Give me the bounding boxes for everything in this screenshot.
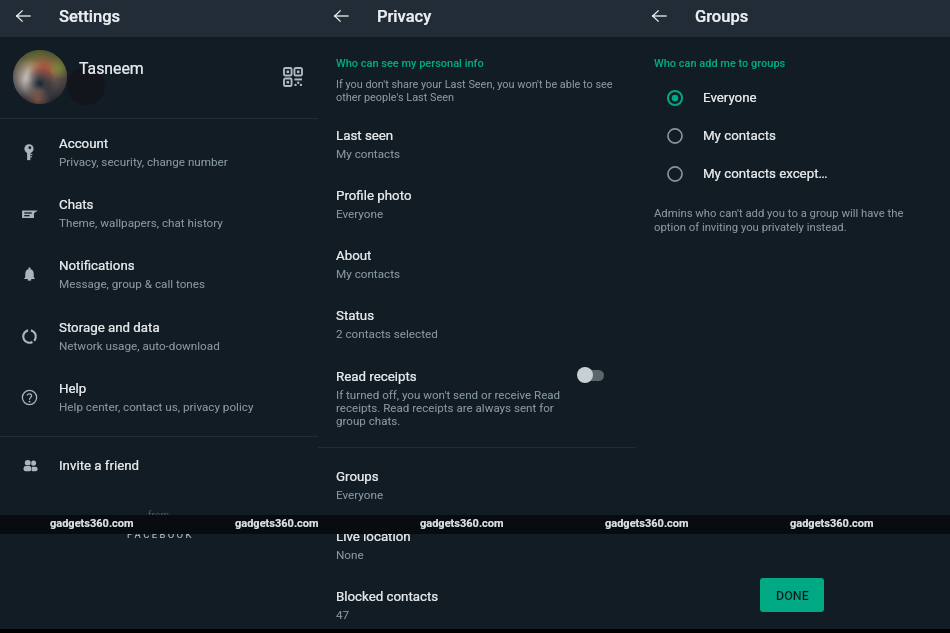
staticText: My contacts	[703, 128, 776, 144]
button[interactable]: Status	[318, 301, 636, 347]
button[interactable]: Storage and data	[0, 313, 318, 359]
staticText: Help	[59, 381, 87, 397]
button[interactable]: Help	[0, 374, 318, 420]
button[interactable]: Groups	[318, 462, 636, 508]
staticText: Everyone	[336, 488, 384, 502]
staticText: Notifications	[59, 258, 135, 274]
staticText: My contacts	[336, 267, 401, 281]
staticText: Read receipts	[336, 369, 417, 385]
staticText: Theme, wallpapers, chat history	[59, 216, 223, 230]
staticText: Who can see my personal info	[336, 57, 484, 70]
staticText: 47	[336, 608, 350, 622]
button[interactable]: Tasneem	[0, 37, 318, 117]
staticText: Blocked contacts	[336, 589, 439, 605]
staticText: Tasneem	[79, 59, 144, 78]
button[interactable]: Blocked contacts	[318, 582, 636, 628]
staticText: Invite a friend	[59, 458, 140, 474]
button[interactable]: Account	[0, 129, 318, 175]
button[interactable]: Chats	[0, 190, 318, 236]
staticText: Admins who can't add you to a group will…	[654, 207, 916, 234]
staticText: Chats	[59, 197, 94, 213]
staticText: Account	[59, 136, 109, 152]
staticText: Network usage, auto-download	[59, 339, 220, 353]
staticText: gadgets360.com	[235, 517, 319, 530]
staticText: If turned off, you won't send or receive…	[336, 388, 567, 428]
staticText: Groups	[695, 7, 749, 26]
staticText: None	[336, 548, 364, 562]
button[interactable]: Live location	[318, 522, 636, 568]
staticText: About	[336, 248, 372, 264]
staticText: Everyone	[336, 207, 384, 221]
staticText: Last seen	[336, 128, 394, 144]
button[interactable]: My QR code	[284, 68, 302, 86]
staticText: gadgets360.com	[790, 517, 874, 530]
staticText: F A C E B O O K	[127, 529, 192, 540]
staticText: Live location	[336, 529, 411, 545]
button[interactable]: Back	[326, 1, 356, 31]
staticText: Help center, contact us, privacy policy	[59, 400, 254, 414]
staticText: My contacts except…	[703, 166, 828, 182]
button[interactable]: Notifications	[0, 251, 318, 297]
button[interactable]: Everyone	[636, 79, 950, 117]
staticText: Privacy	[377, 7, 432, 26]
button[interactable]: Back	[644, 1, 674, 31]
button[interactable]: Back	[8, 1, 38, 31]
staticText: Storage and data	[59, 320, 160, 336]
button[interactable]: My contacts	[636, 117, 950, 155]
staticText: If you don't share your Last Seen, you w…	[336, 78, 626, 104]
button[interactable]: Last seen	[318, 121, 636, 167]
staticText: DONE	[776, 588, 809, 603]
staticText: Message, group & call tones	[59, 277, 206, 291]
button[interactable]: Invite a friend	[0, 446, 318, 486]
button[interactable]: Profile photo	[318, 181, 636, 227]
staticText: Groups	[336, 469, 379, 485]
staticText: gadgets360.com	[605, 517, 689, 530]
staticText: from	[148, 510, 170, 522]
staticText: gadgets360.com	[420, 517, 504, 530]
staticText: Settings	[59, 7, 121, 26]
staticText: Privacy, security, change number	[59, 155, 228, 169]
staticText: 2 contacts selected	[336, 327, 438, 341]
staticText: Status	[336, 308, 375, 324]
staticText: Everyone	[703, 90, 757, 106]
staticText: Profile photo	[336, 188, 412, 204]
staticText: My contacts	[336, 147, 401, 161]
staticText: gadgets360.com	[50, 517, 134, 530]
button[interactable]: My contacts except…	[636, 155, 950, 193]
button[interactable]: DONE	[760, 578, 824, 612]
button[interactable]: About	[318, 241, 636, 287]
staticText: Who can add me to groups	[654, 57, 786, 70]
button[interactable]: Read receipts	[318, 353, 636, 431]
